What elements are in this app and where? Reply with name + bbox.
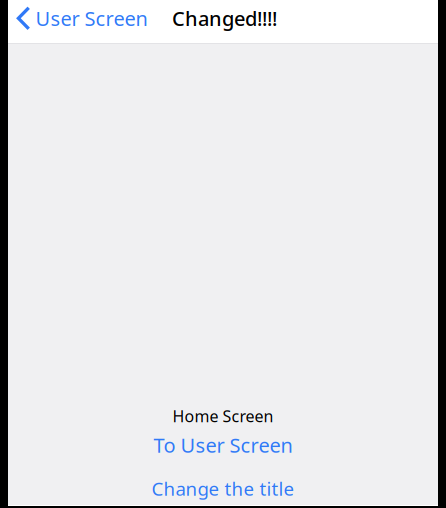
button[interactable]: To User Screen	[153, 432, 292, 458]
staticText: Home Screen	[172, 405, 273, 427]
staticText: User Screen	[35, 5, 147, 32]
button[interactable]: Back to User Screen	[8, 0, 153, 46]
staticText: Changed!!!!	[172, 5, 277, 32]
staticText: To User Screen	[153, 432, 292, 458]
button[interactable]: Change the title	[151, 476, 294, 501]
staticText: Change the title	[151, 476, 294, 501]
